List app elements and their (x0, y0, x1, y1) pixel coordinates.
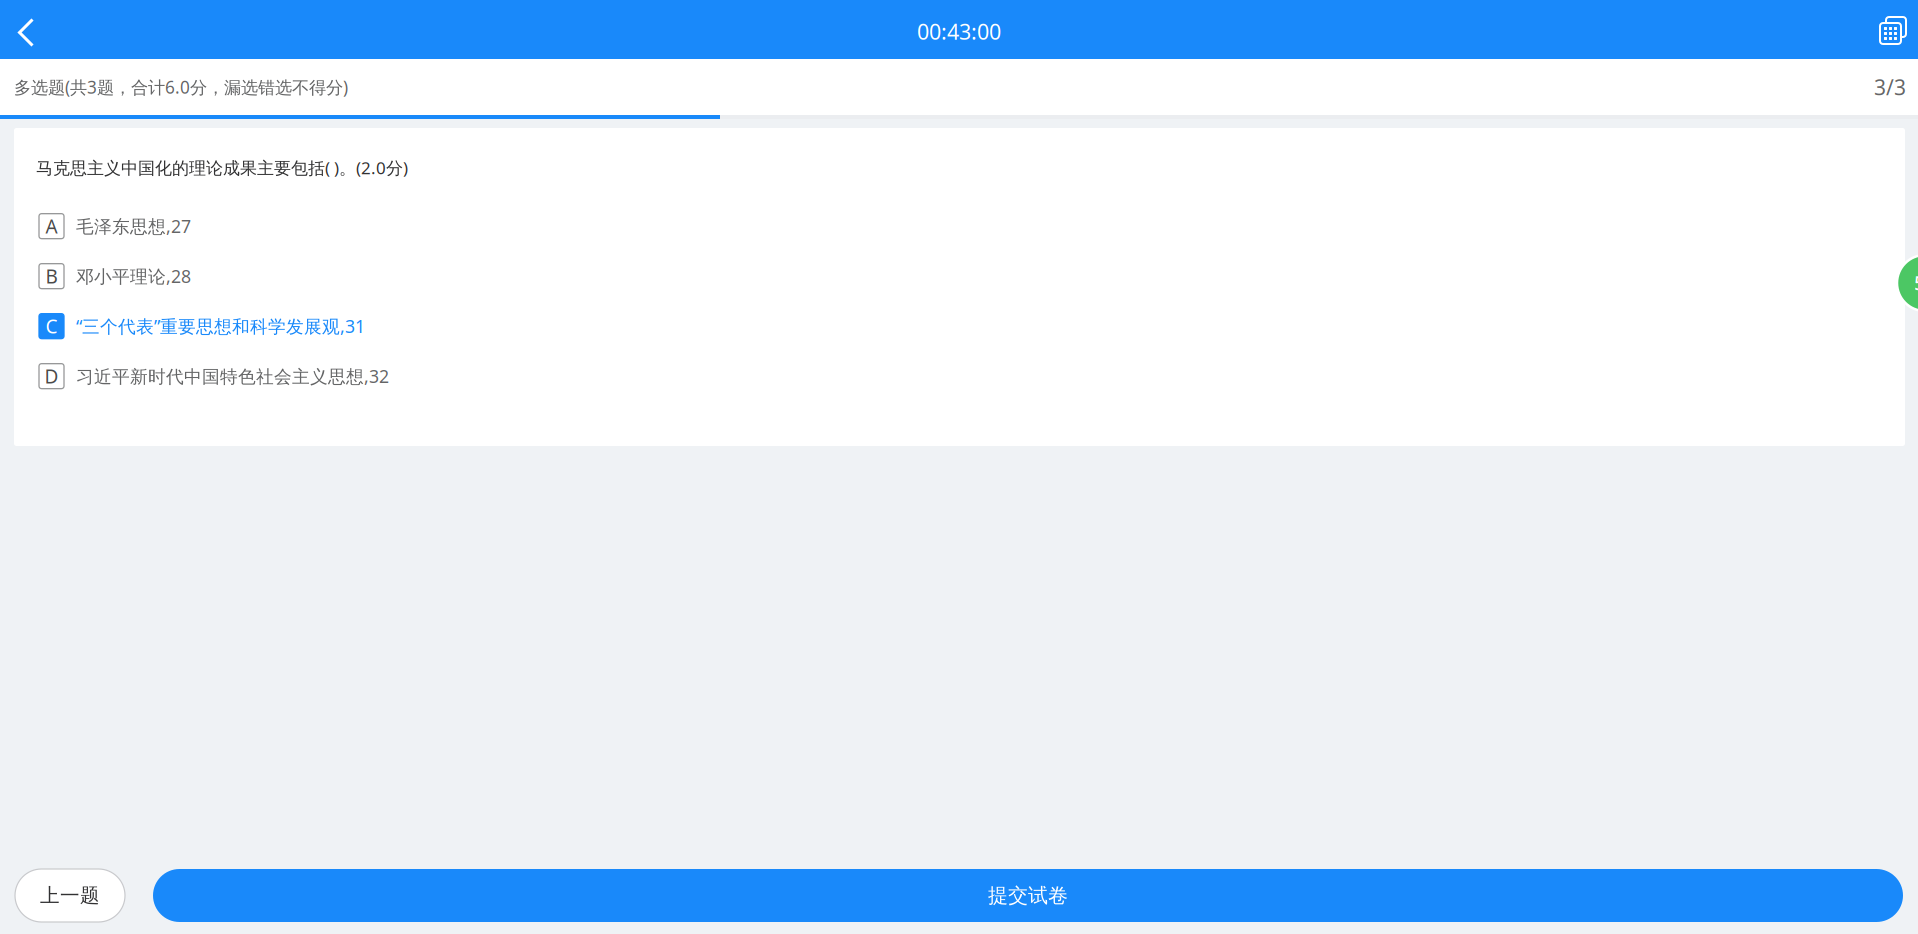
staticText: 3/3 (1874, 73, 1906, 101)
button[interactable]: Answer sheet (1863, 0, 1918, 59)
staticText: 59 (1914, 270, 1918, 296)
staticText: 习近平新时代中国特色社会主义思想,32 (76, 364, 389, 388)
button[interactable]: 上一题 (15, 869, 125, 922)
button[interactable]: Answered questions (1897, 255, 1918, 311)
staticText: B (45, 263, 57, 289)
button[interactable]: C (39, 301, 1883, 351)
staticText: 马克思主义中国化的理论成果主要包括( )。(2.0分) (36, 156, 408, 179)
button[interactable]: B (39, 251, 1883, 301)
staticText: “三个代表”重要思想和科学发展观,31 (76, 314, 365, 338)
staticText: A (45, 213, 57, 239)
staticText: C (45, 313, 57, 339)
staticText: D (44, 363, 58, 389)
button[interactable]: D (39, 351, 1883, 401)
staticText: 00:43:00 (917, 17, 1001, 46)
button[interactable]: Back (0, 0, 52, 59)
button[interactable]: 提交试卷 (153, 869, 1903, 922)
staticText: 毛泽东思想,27 (76, 214, 191, 238)
staticText: 邓小平理论,28 (76, 264, 191, 288)
button[interactable]: A (39, 201, 1883, 251)
staticText: 多选题(共3题，合计6.0分，漏选错选不得分) (14, 75, 348, 99)
staticText: 提交试卷 (988, 883, 1068, 908)
staticText: 上一题 (40, 883, 100, 908)
